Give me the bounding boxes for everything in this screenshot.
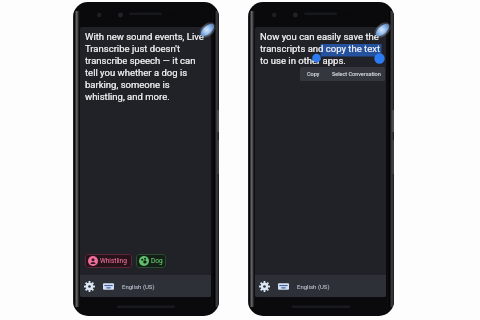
staticText: Dog (151, 257, 163, 265)
button[interactable]: Keyboard (274, 277, 293, 296)
button[interactable]: Keyboard (99, 277, 118, 296)
staticText: Now you can easily save the transcripts … (260, 31, 381, 66)
button[interactable]: Settings (80, 277, 99, 296)
staticText: Select Conversation (332, 71, 381, 77)
button[interactable]: Whistling (85, 254, 132, 268)
button[interactable]: Copy (300, 67, 327, 81)
button[interactable]: Dog (136, 254, 166, 268)
staticText: Copy (307, 71, 320, 77)
staticText: With new sound events, Live Transcribe j… (85, 31, 204, 102)
button[interactable]: Select Conversation (327, 67, 385, 81)
button[interactable]: Settings (255, 277, 274, 296)
staticText: Whistling (100, 257, 127, 265)
staticText: English (US) (122, 283, 155, 290)
staticText: English (US) (297, 283, 330, 290)
